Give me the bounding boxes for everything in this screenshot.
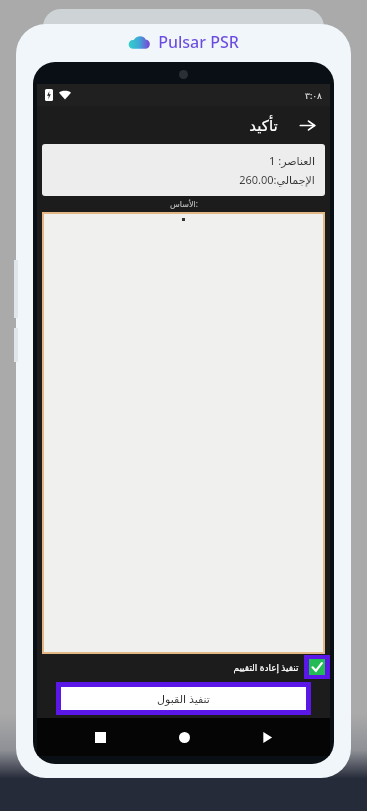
staticText: الأساس: [170,198,198,209]
button[interactable]: تنفيذ القبول [56,682,311,715]
button[interactable]: Back [247,718,287,756]
staticText: تنفيذ القبول [157,691,210,706]
staticText: ٣:٠٨ [305,89,322,101]
button[interactable]: رجوع [294,112,320,138]
staticText: Pulsar PSR [158,31,239,53]
button[interactable]: تنفيذ إعادة التقييم [37,655,330,679]
button[interactable]: العناصر: 1 [42,144,325,196]
button[interactable]: Home [164,718,204,756]
staticText: تأكيد [249,117,278,134]
button[interactable]: Recents [80,718,120,756]
staticText: تنفيذ إعادة التقييم [233,661,299,673]
staticText: الإجمالي:260.00 [239,172,315,187]
staticText: العناصر: 1 [269,153,315,168]
